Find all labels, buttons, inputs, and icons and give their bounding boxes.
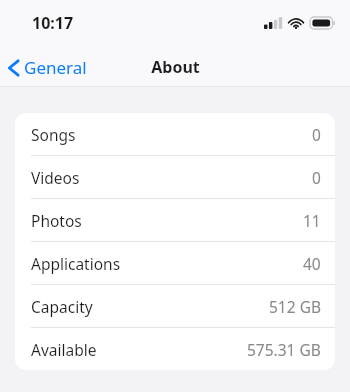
staticText: 512 GB <box>269 296 321 317</box>
button[interactable]: Photos <box>15 199 335 241</box>
button[interactable]: Songs <box>15 113 335 155</box>
staticText: Capacity <box>31 296 93 317</box>
button[interactable]: Capacity <box>15 285 335 327</box>
button[interactable]: Applications <box>15 242 335 284</box>
staticText: About <box>151 56 200 78</box>
staticText: 10:17 <box>32 12 74 34</box>
button[interactable]: Available <box>15 328 335 370</box>
staticText: Available <box>31 339 97 360</box>
staticText: Photos <box>31 210 82 231</box>
staticText: 0 <box>312 124 321 145</box>
button[interactable]: General <box>0 52 97 83</box>
button[interactable]: Videos <box>15 156 335 198</box>
staticText: 11 <box>303 210 321 231</box>
staticText: Applications <box>31 253 121 274</box>
staticText: Songs <box>31 124 76 145</box>
staticText: General <box>24 56 87 79</box>
staticText: Videos <box>31 167 80 188</box>
staticText: 0 <box>312 167 321 188</box>
staticText: 575.31 GB <box>247 339 321 360</box>
staticText: 40 <box>303 253 321 274</box>
